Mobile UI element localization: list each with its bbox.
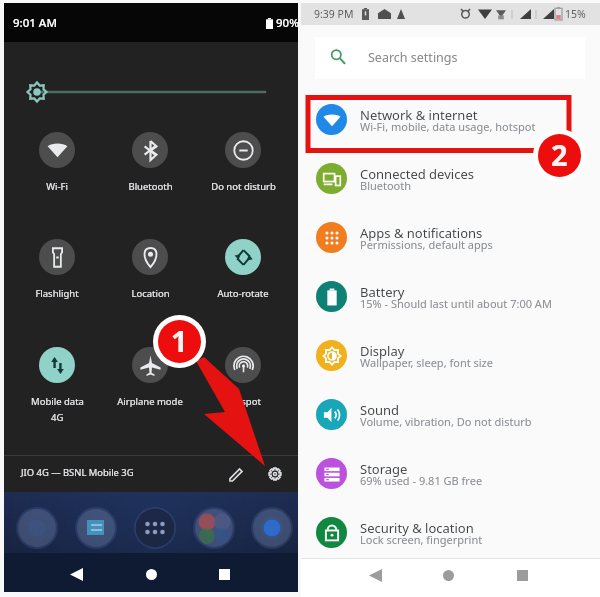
staticText: JIO 4G — BSNL Mobile 3G [21, 466, 134, 479]
button[interactable]: Home [134, 559, 168, 589]
button[interactable]: Flashlight [11, 239, 103, 300]
button[interactable]: Location [104, 239, 196, 300]
button[interactable]: Connected devices [301, 149, 600, 208]
staticText: Permissions, default apps [360, 237, 493, 252]
staticText: Hotspot [225, 395, 261, 408]
staticText: Sound [360, 401, 400, 419]
button[interactable]: Settings [261, 460, 289, 488]
staticText: 4G [51, 411, 64, 424]
staticText: 9:01 AM [13, 15, 57, 31]
staticText: 69% used - 9.81 GB free [360, 473, 483, 488]
button[interactable]: Wi-Fi [11, 132, 103, 193]
staticText: Do not disturb [211, 180, 276, 193]
staticText: 15% - Should last until about 7:00 AM [360, 296, 552, 311]
staticText: 1 [171, 321, 188, 360]
staticText: Location [131, 287, 170, 300]
button[interactable]: Recents [505, 560, 539, 590]
staticText: Auto-rotate [217, 287, 269, 300]
button[interactable]: Battery [301, 267, 600, 326]
staticText: Bluetooth [128, 180, 173, 193]
staticText: 9:39 PM [314, 7, 354, 21]
button[interactable]: Bluetooth [104, 132, 196, 193]
button[interactable]: Sound [301, 385, 600, 444]
button[interactable]: Recents [207, 559, 241, 589]
staticText: 2 [551, 135, 568, 174]
staticText: Volume, vibration, Do not disturb [360, 414, 532, 429]
staticText: Display [360, 342, 405, 360]
staticText: Network & internet [360, 106, 478, 124]
staticText: Storage [360, 460, 408, 478]
button[interactable]: Mobile data [11, 347, 103, 424]
staticText: Search settings [368, 49, 458, 66]
button[interactable]: Do not disturb [197, 132, 289, 193]
button[interactable]: Back [358, 560, 392, 590]
button[interactable]: Home [431, 560, 465, 590]
button[interactable]: Network & internet [301, 90, 600, 149]
staticText: Flashlight [35, 287, 79, 300]
staticText: Battery [360, 283, 405, 301]
staticText: Wallpaper, sleep, font size [360, 355, 493, 370]
staticText: Lock screen, fingerprint [360, 532, 483, 547]
button[interactable]: Display [301, 326, 600, 385]
staticText: Wi-Fi [46, 180, 68, 193]
button[interactable]: Apps & notifications [301, 208, 600, 267]
button[interactable]: Auto-rotate [197, 239, 289, 300]
staticText: Bluetooth [360, 178, 412, 193]
staticText: Connected devices [360, 165, 474, 183]
staticText: Airplane mode [117, 395, 183, 408]
button[interactable]: Storage [301, 444, 600, 503]
button[interactable]: Search settings [315, 37, 585, 79]
staticText: Apps & notifications [360, 224, 483, 242]
staticText: 90% [276, 15, 299, 31]
staticText: Wi-Fi, mobile, data usage, hotspot [360, 119, 536, 134]
button[interactable]: Edit [222, 461, 250, 489]
staticText: 15% [565, 7, 586, 21]
staticText: Security & location [360, 519, 474, 537]
button[interactable]: Security & location [301, 503, 600, 562]
button[interactable]: Airplane mode [104, 347, 196, 408]
staticText: Mobile data [31, 395, 84, 408]
button[interactable]: Back [59, 559, 93, 589]
button[interactable]: Hotspot [197, 347, 289, 408]
